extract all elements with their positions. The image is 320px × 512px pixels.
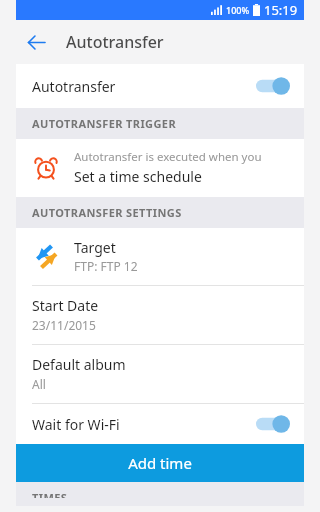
staticText: Autotransfer xyxy=(32,77,256,96)
button[interactable]: Autotransfer xyxy=(16,64,304,108)
staticText: Autotransfer xyxy=(66,31,164,53)
button[interactable]: Wait for Wi-Fi xyxy=(16,404,304,444)
staticText: Start Date xyxy=(32,296,99,315)
staticText: Set a time schedule xyxy=(74,167,202,186)
staticText: Autotransfer is executed when you xyxy=(74,149,262,165)
staticText: 15:19 xyxy=(264,1,298,19)
staticText: 23/11/2015 xyxy=(32,317,96,333)
button[interactable]: Target xyxy=(16,228,304,285)
staticText: 100% xyxy=(226,4,250,16)
staticText: AUTOTRANSFER TRIGGER xyxy=(32,116,177,131)
staticText: Default album xyxy=(32,355,126,374)
button[interactable]: Back xyxy=(16,22,56,62)
staticText: TIMES xyxy=(32,490,68,498)
staticText: AUTOTRANSFER SETTINGS xyxy=(32,205,182,220)
button[interactable]: Autotransfer is executed when you xyxy=(16,139,304,197)
staticText: Target xyxy=(74,238,116,257)
button[interactable]: Add time xyxy=(16,444,304,482)
staticText: Wait for Wi-Fi xyxy=(32,415,256,434)
staticText: Add time xyxy=(128,453,192,473)
staticText: All xyxy=(32,376,46,392)
button[interactable]: Start Date xyxy=(16,286,304,344)
staticText: FTP: FTP 12 xyxy=(74,258,138,274)
button[interactable]: Default album xyxy=(16,345,304,403)
